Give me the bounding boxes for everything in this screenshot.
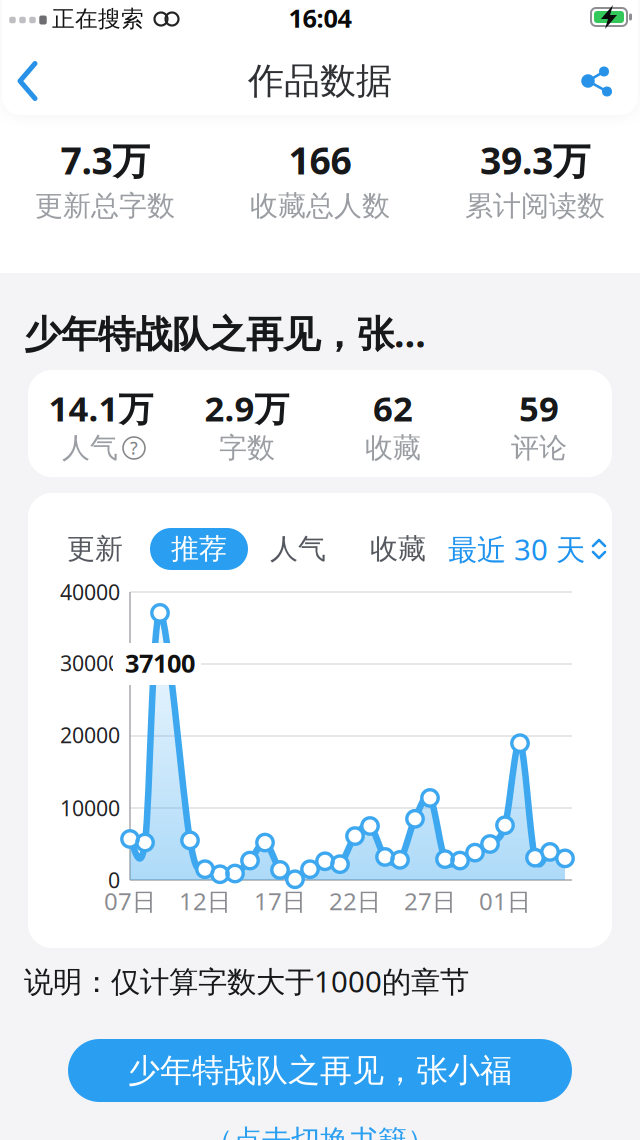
- button[interactable]: 收藏: [360, 527, 436, 571]
- staticText: 59: [519, 385, 559, 431]
- staticText: 7.3万: [60, 135, 149, 185]
- staticText: 收藏: [370, 532, 426, 566]
- staticText: 01日: [479, 885, 531, 917]
- button[interactable]: Share: [566, 52, 622, 109]
- staticText: 62: [373, 385, 413, 431]
- staticText: 推荐: [171, 532, 227, 566]
- button[interactable]: （点击切换书籍）: [204, 1123, 436, 1140]
- staticText: 作品数据: [248, 59, 392, 103]
- staticText: 评论: [511, 431, 567, 465]
- button[interactable]: Back: [12, 52, 56, 109]
- button[interactable]: 更新: [57, 527, 133, 571]
- staticText: 2.9万: [204, 385, 289, 431]
- staticText: 12日: [179, 885, 231, 917]
- staticText: 40000: [60, 578, 120, 606]
- staticText: 37100: [125, 646, 195, 680]
- staticText: 27日: [404, 885, 456, 917]
- staticText: 更新总字数: [35, 189, 175, 223]
- staticText: 14.1万: [48, 385, 153, 431]
- staticText: 更新: [67, 532, 123, 566]
- staticText: 0: [108, 866, 120, 894]
- staticText: 10000: [60, 794, 120, 822]
- staticText: 最近 30 天: [448, 529, 585, 568]
- staticText: 少年特战队之再见，张小福: [128, 1051, 512, 1090]
- staticText: 字数: [219, 431, 275, 465]
- staticText: 30000: [60, 649, 120, 677]
- staticText: 说明：仅计算字数大于1000的章节: [24, 961, 469, 1000]
- staticText: 39.3万: [480, 135, 590, 185]
- staticText: （点击切换书籍）: [204, 1123, 436, 1140]
- staticText: 正在搜索: [52, 5, 144, 33]
- staticText: 07日: [104, 885, 156, 917]
- staticText: 166: [288, 135, 351, 185]
- staticText: 20000: [60, 721, 120, 749]
- staticText: ?: [130, 436, 138, 459]
- button[interactable]: 最近 30 天: [448, 529, 606, 568]
- staticText: 收藏总人数: [250, 189, 390, 223]
- staticText: 累计阅读数: [465, 189, 605, 223]
- button[interactable]: 少年特战队之再见，张小福: [68, 1039, 572, 1102]
- button[interactable]: 推荐: [150, 528, 248, 570]
- button[interactable]: 人气: [260, 527, 336, 571]
- staticText: 16:04: [288, 1, 351, 35]
- staticText: 22日: [329, 885, 381, 917]
- staticText: 17日: [254, 885, 306, 917]
- staticText: 人气: [270, 532, 326, 566]
- staticText: 人气: [62, 431, 118, 465]
- staticText: 少年特战队之再见，张…: [24, 308, 426, 358]
- button[interactable]: 人气说明: [121, 435, 147, 461]
- staticText: 收藏: [365, 431, 421, 465]
